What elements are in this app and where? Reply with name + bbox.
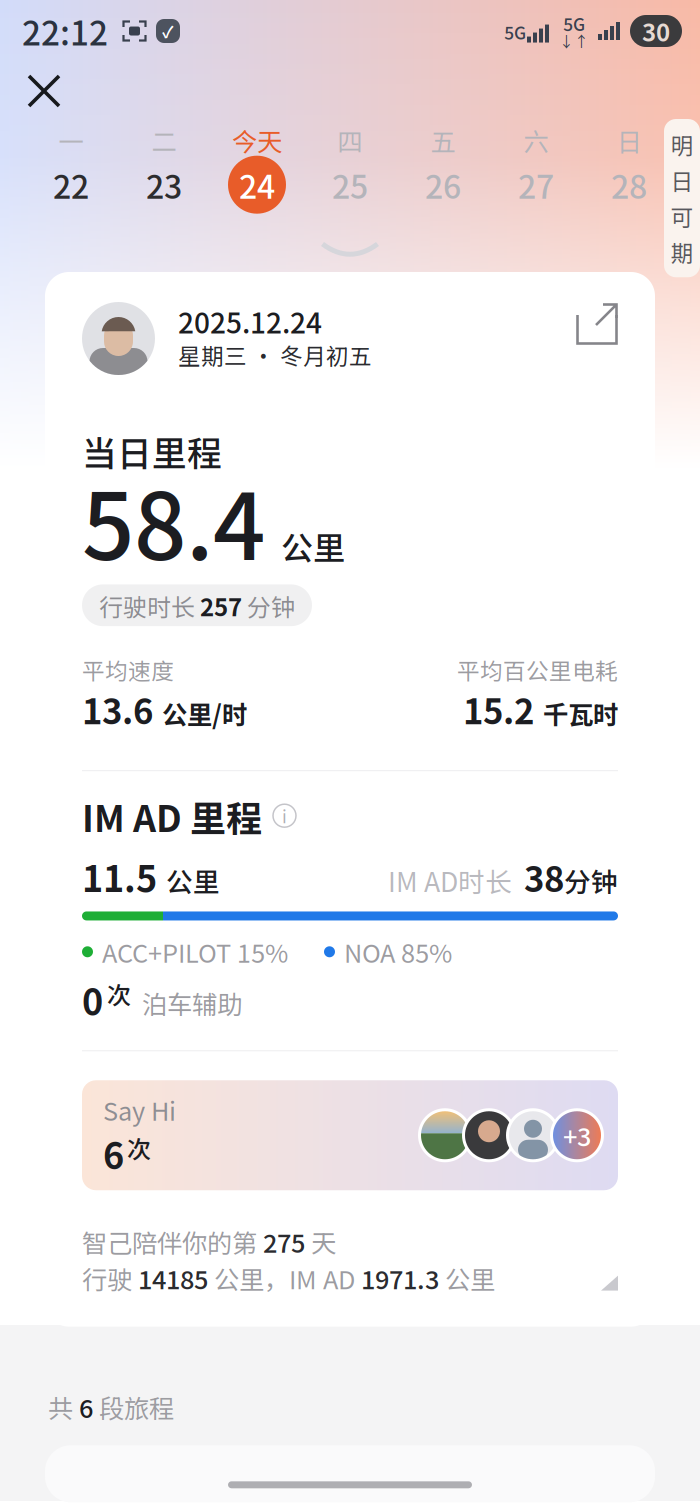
staticText: 2025.12.24: [178, 301, 322, 341]
staticText: 次: [127, 1130, 151, 1165]
staticText: ACC+PILOT 15%: [102, 933, 288, 970]
staticText: ✓: [162, 19, 174, 43]
staticText: IM AD 里程: [82, 790, 262, 842]
staticText: 星期三 · 冬月初五: [178, 338, 372, 371]
staticText: 五: [430, 122, 455, 159]
staticText: 日: [616, 122, 641, 159]
staticText: NOA 85%: [344, 933, 452, 970]
button[interactable]: 五: [396, 120, 489, 226]
staticText: 分钟: [564, 861, 618, 900]
staticText: 25: [332, 161, 368, 208]
staticText: 泊车辅助: [142, 985, 242, 1021]
staticText: 行驶时长: [99, 588, 200, 623]
staticText: IM AD时长: [388, 861, 512, 900]
staticText: 11.5: [82, 850, 157, 902]
staticText: 公里，IM AD: [208, 1260, 361, 1297]
staticText: 58.4: [82, 453, 265, 586]
staticText: 公里: [439, 1260, 495, 1297]
staticText: 期: [670, 235, 693, 268]
button[interactable]: 明: [664, 119, 700, 277]
staticText: 27: [518, 161, 554, 208]
staticText: 智己陪伴你的第: [82, 1223, 263, 1260]
staticText: 分钟: [242, 588, 295, 623]
staticText: 22:12: [22, 7, 108, 55]
staticText: 13.6: [82, 684, 153, 734]
staticText: 5G: [504, 19, 526, 45]
staticText: 6: [103, 1127, 124, 1179]
staticText: 6: [79, 1389, 93, 1425]
button[interactable]: 日: [582, 120, 675, 226]
staticText: 六: [523, 122, 548, 159]
staticText: 四: [337, 122, 362, 159]
staticText: 二: [151, 122, 176, 159]
staticText: 公里/时: [162, 695, 247, 731]
button[interactable]: 一: [24, 120, 117, 226]
staticText: 千瓦时: [543, 695, 618, 731]
staticText: 明: [670, 128, 693, 161]
staticText: 平均百公里电耗: [457, 653, 618, 686]
staticText: 平均速度: [82, 653, 174, 686]
staticText: 天: [305, 1223, 336, 1260]
button[interactable]: 四: [303, 120, 396, 226]
staticText: 23: [146, 161, 182, 208]
staticText: 可: [670, 200, 693, 232]
staticText: 14185: [138, 1260, 208, 1297]
staticText: 一: [58, 122, 83, 159]
staticText: ↓↑: [559, 30, 589, 51]
staticText: 5G: [563, 11, 585, 36]
staticText: 26: [425, 161, 461, 208]
button[interactable]: Say Hi: [82, 1080, 618, 1190]
staticText: 28: [611, 161, 647, 208]
staticText: 24: [239, 161, 275, 208]
staticText: 257: [200, 588, 242, 623]
staticText: 公里: [166, 861, 220, 900]
staticText: 30: [642, 14, 670, 48]
button[interactable]: Share: [576, 302, 618, 345]
staticText: +3: [563, 1117, 591, 1154]
staticText: 公里: [281, 523, 345, 569]
staticText: 1971.3: [361, 1260, 439, 1297]
button[interactable]: Close: [17, 64, 71, 118]
button[interactable]: 二: [117, 120, 210, 226]
button[interactable]: 六: [489, 120, 582, 226]
staticText: 今天: [232, 122, 282, 159]
staticText: 行驶: [82, 1260, 138, 1297]
staticText: 38: [524, 852, 564, 902]
staticText: 275: [263, 1223, 305, 1260]
staticText: 日: [670, 164, 693, 197]
staticText: i: [282, 803, 287, 828]
staticText: 共: [48, 1389, 79, 1425]
staticText: 22: [53, 161, 89, 208]
staticText: 当日里程: [82, 426, 222, 476]
staticText: 段旅程: [93, 1389, 174, 1425]
staticText: 次: [107, 976, 131, 1011]
staticText: Say Hi: [103, 1091, 176, 1128]
staticText: 15.2: [463, 684, 534, 734]
staticText: 0: [82, 973, 103, 1025]
button[interactable]: 今天: [210, 120, 303, 226]
